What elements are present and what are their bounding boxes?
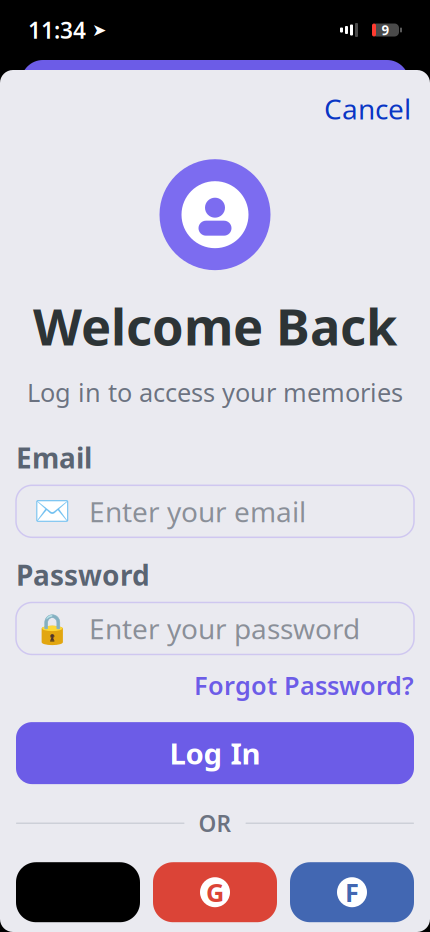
staticText: ✉️ [34, 494, 71, 528]
staticText: Email [16, 439, 92, 476]
staticText: Password [16, 556, 150, 593]
staticText: Enter your password [89, 610, 360, 647]
staticText: Enter your email [89, 493, 306, 530]
button[interactable]: Sign in with Apple [16, 862, 140, 922]
button[interactable]: ✉️ [16, 485, 414, 537]
staticText: Log in to access your memories [27, 375, 403, 409]
staticText: 11:34 [28, 15, 86, 45]
button[interactable]: Log In [16, 722, 414, 784]
button[interactable]: 🔒 [16, 602, 414, 654]
button[interactable]: Cancel [318, 82, 417, 135]
staticText: Welcome Back [33, 292, 397, 359]
staticText: Forgot Password? [194, 668, 414, 702]
staticText: ➤ [86, 20, 107, 40]
staticText: OR [198, 808, 231, 838]
button[interactable]: Forgot Password? [194, 664, 414, 706]
staticText: 🔒 [34, 612, 71, 645]
staticText: 9 [381, 21, 389, 39]
button[interactable]: Sign in with Google [153, 862, 277, 922]
staticText: F [345, 875, 359, 909]
button[interactable]: Sign in with Facebook [290, 862, 414, 922]
staticText: Cancel [324, 90, 411, 127]
staticText: G [206, 875, 224, 909]
staticText: Log In [169, 734, 260, 773]
